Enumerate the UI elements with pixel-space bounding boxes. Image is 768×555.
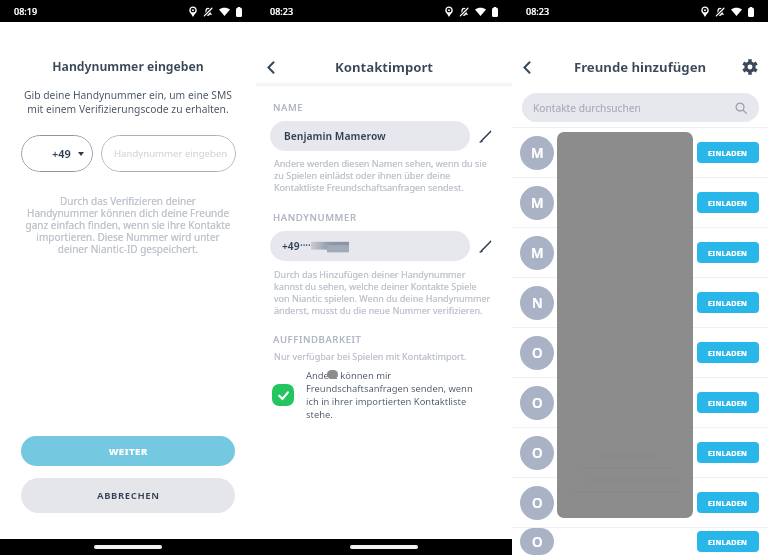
staticText: NAME: [273, 101, 304, 114]
staticText: AUFFINDBARKEIT: [273, 333, 362, 346]
button[interactable]: Edit phone number: [470, 231, 500, 261]
button[interactable]: M: [520, 128, 759, 177]
button[interactable]: WEITER: [21, 436, 235, 466]
button[interactable]: Handynummer eingeben: [101, 135, 236, 172]
staticText: O: [532, 394, 543, 412]
staticText: Kontakte durchsuchen: [533, 101, 641, 115]
button[interactable]: EINLADEN: [697, 492, 759, 513]
button[interactable]: O: [520, 328, 759, 377]
staticText: Durch das Hinzufügen deiner Handynummer …: [274, 268, 491, 316]
staticText: Nur verfügbar bei Spielen mit Kontaktimp…: [274, 350, 467, 362]
staticText: O: [532, 494, 543, 512]
button[interactable]: EINLADEN: [697, 442, 759, 463]
staticText: Gib deine Handynummer ein, um eine SMS m…: [10, 88, 246, 116]
staticText: EINLADEN: [708, 348, 748, 358]
button[interactable]: M: [520, 228, 759, 277]
staticText: EINLADEN: [708, 498, 748, 508]
button[interactable]: O: [520, 378, 759, 427]
staticText: M: [531, 244, 544, 262]
button[interactable]: Back: [515, 55, 539, 79]
button[interactable]: Settings: [737, 54, 763, 80]
staticText: EINLADEN: [708, 248, 748, 258]
staticText: Freunde hinzufügen: [574, 58, 707, 76]
staticText: HANDYNUMMER: [273, 211, 357, 224]
staticText: Handynummer eingeben: [114, 147, 228, 160]
button[interactable]: Back: [259, 55, 283, 79]
staticText: Andere werden diesen Namen sehen, wenn d…: [274, 157, 487, 193]
staticText: 08:19: [14, 5, 38, 17]
staticText: EINLADEN: [708, 198, 748, 208]
staticText: Kontaktimport: [335, 58, 434, 76]
staticText: 08:23: [270, 5, 294, 17]
button[interactable]: Andere können mir Freundschaftsanfragen …: [272, 369, 502, 421]
button[interactable]: EINLADEN: [697, 192, 759, 213]
button[interactable]: EINLADEN: [697, 142, 759, 163]
staticText: EINLADEN: [708, 298, 748, 308]
staticText: O: [532, 344, 543, 362]
staticText: EINLADEN: [708, 148, 748, 158]
staticText: WEITER: [109, 445, 148, 458]
button[interactable]: N: [520, 278, 759, 327]
staticText: Durch das Verifizieren deiner Handynumme…: [4, 194, 252, 256]
button[interactable]: +49: [270, 231, 470, 261]
button[interactable]: ABBRECHEN: [21, 478, 235, 513]
button[interactable]: EINLADEN: [697, 342, 759, 363]
staticText: ABBRECHEN: [97, 489, 160, 502]
staticText: O: [532, 444, 543, 462]
staticText: +49: [52, 146, 71, 161]
staticText: +49: [282, 239, 300, 253]
button[interactable]: +49: [21, 135, 93, 172]
button[interactable]: EINLADEN: [697, 531, 759, 552]
button[interactable]: Edit name: [470, 121, 500, 151]
button[interactable]: O: [520, 528, 759, 555]
button[interactable]: O: [520, 478, 759, 527]
staticText: Benjamin Mamerow: [284, 129, 386, 143]
staticText: Andere können mir Freundschaftsanfragen …: [306, 369, 473, 421]
staticText: Handynummer eingeben: [0, 58, 256, 75]
button[interactable]: Kontakte durchsuchen: [522, 93, 759, 122]
staticText: N: [532, 294, 543, 312]
other: Search: [735, 102, 747, 114]
button[interactable]: EINLADEN: [697, 292, 759, 313]
staticText: M: [531, 194, 544, 212]
button[interactable]: EINLADEN: [697, 392, 759, 413]
button[interactable]: EINLADEN: [697, 242, 759, 263]
staticText: EINLADEN: [708, 537, 748, 547]
staticText: EINLADEN: [708, 448, 748, 458]
staticText: EINLADEN: [708, 398, 748, 408]
button[interactable]: O: [520, 428, 759, 477]
staticText: 08:23: [526, 5, 550, 17]
button[interactable]: M: [520, 178, 759, 227]
staticText: O: [532, 533, 543, 551]
button[interactable]: Benjamin Mamerow: [270, 121, 470, 151]
staticText: M: [531, 144, 544, 162]
staticText: ••••: [300, 241, 311, 251]
